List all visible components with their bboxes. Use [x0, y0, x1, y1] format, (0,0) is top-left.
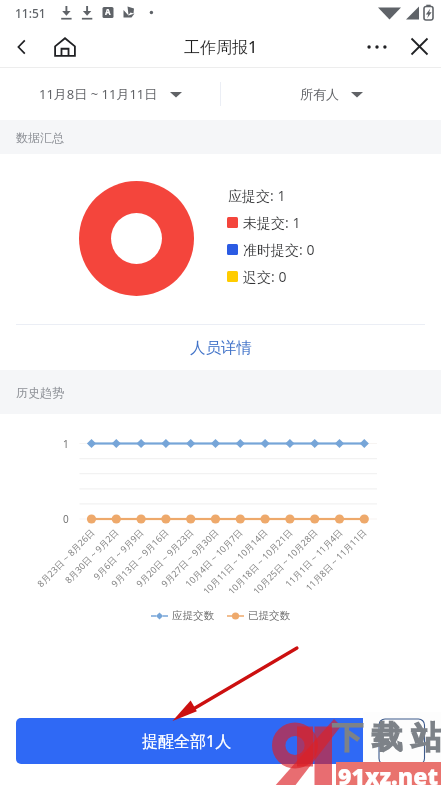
button[interactable]: 人员详情 [0, 325, 441, 370]
button[interactable]: Home [43, 25, 86, 68]
staticText: 11月8日 ~ 11月11日 [290, 526, 368, 606]
staticText: 11月1日 ~ 11月4日 [266, 526, 344, 606]
staticText: 10月4日 ~ 10月7日 [166, 526, 244, 606]
staticText: A [105, 6, 111, 17]
staticText: 提醒全部1人 [142, 730, 232, 752]
staticText: 已提交数 [248, 609, 290, 622]
staticText: 11:51 [15, 5, 46, 21]
button[interactable]: Close [398, 25, 441, 68]
staticText: 迟交: 0 [243, 267, 287, 286]
button[interactable]: 11月8日 ~ 11月11日 [0, 85, 220, 103]
staticText: 下载站 [332, 718, 441, 757]
staticText: 10月18日 ~ 10月21日 [216, 526, 294, 606]
staticText: 历史趋势 [16, 385, 64, 400]
staticText: 9月27日 ~ 9月30日 [142, 526, 220, 606]
staticText: 0 [63, 512, 69, 526]
staticText: 9月13日 ~ 9月16日 [92, 526, 170, 606]
staticText: 应提交: 1 [228, 186, 286, 205]
staticText: 应提交数 [172, 609, 214, 622]
staticText: 所有人 [300, 86, 339, 102]
button[interactable]: 提醒全部1人 [16, 718, 425, 764]
staticText: 11月8日 ~ 11月11日 [39, 85, 158, 103]
button[interactable]: More options [355, 25, 398, 68]
staticText: 8月23日 ~ 8月26日 [18, 526, 96, 606]
staticText: 10月25日 ~ 10月28日 [241, 526, 319, 606]
staticText: 10月11日 ~ 10月14日 [191, 526, 269, 606]
staticText: 9月6日 ~ 9月9日 [67, 526, 145, 606]
staticText: 数据汇总 [16, 130, 64, 145]
staticText: 工作周报1 [184, 36, 258, 58]
staticText: 91xz.net [338, 760, 438, 785]
staticText: 1 [63, 437, 69, 451]
staticText: 9月20日 ~ 9月23日 [117, 526, 195, 606]
staticText: 8月30日 ~ 9月2日 [42, 526, 120, 606]
staticText: 未提交: 1 [243, 213, 301, 232]
staticText: 人员详情 [190, 338, 252, 358]
button[interactable]: Back [0, 25, 43, 68]
button[interactable]: 所有人 [221, 86, 441, 102]
staticText: 准时提交: 0 [243, 240, 315, 259]
